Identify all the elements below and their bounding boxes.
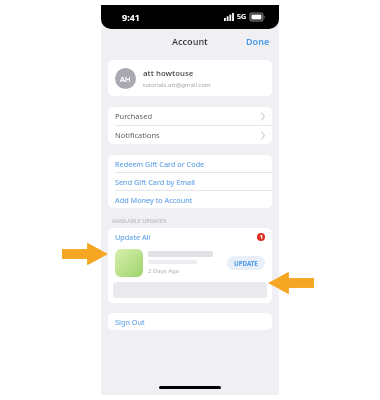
button[interactable]: Update All	[108, 228, 272, 245]
button[interactable]: AH	[108, 60, 272, 96]
staticText: 9:41	[122, 11, 140, 23]
staticText: Notifications	[115, 130, 160, 140]
staticText: Done	[246, 35, 270, 47]
staticText: Purchased	[115, 111, 152, 121]
staticText: 2 Days Ago	[148, 267, 180, 275]
button[interactable]: UPDATE	[227, 256, 265, 270]
button[interactable]: Notifications	[108, 126, 272, 144]
button[interactable]: Send Gift Card by Email	[108, 173, 272, 190]
staticText: Send Gift Card by Email	[115, 177, 195, 187]
staticText: Add Money to Account	[115, 195, 193, 205]
staticText: Redeem Gift Card or Code	[115, 159, 205, 169]
button[interactable]: Add Money to Account	[108, 191, 272, 208]
staticText: UPDATE	[234, 259, 258, 267]
button[interactable]: 2 Days Ago	[108, 245, 272, 280]
button[interactable]: Purchased	[108, 107, 272, 125]
staticText: att howtouse	[143, 68, 194, 79]
staticText: 5G	[237, 12, 247, 22]
staticText: Account	[172, 35, 208, 47]
button[interactable]: Sign Out	[108, 313, 272, 330]
staticText: Sign Out	[115, 317, 145, 327]
staticText: AH	[120, 74, 131, 84]
button[interactable]: Done	[237, 31, 279, 51]
staticText: tutorials.att@gmail.com	[143, 81, 211, 89]
button[interactable]: Redeem Gift Card or Code	[108, 155, 272, 172]
staticText: AVAILABLE UPDATES	[112, 217, 167, 225]
staticText: 1	[260, 234, 263, 241]
staticText: Update All	[115, 232, 151, 242]
